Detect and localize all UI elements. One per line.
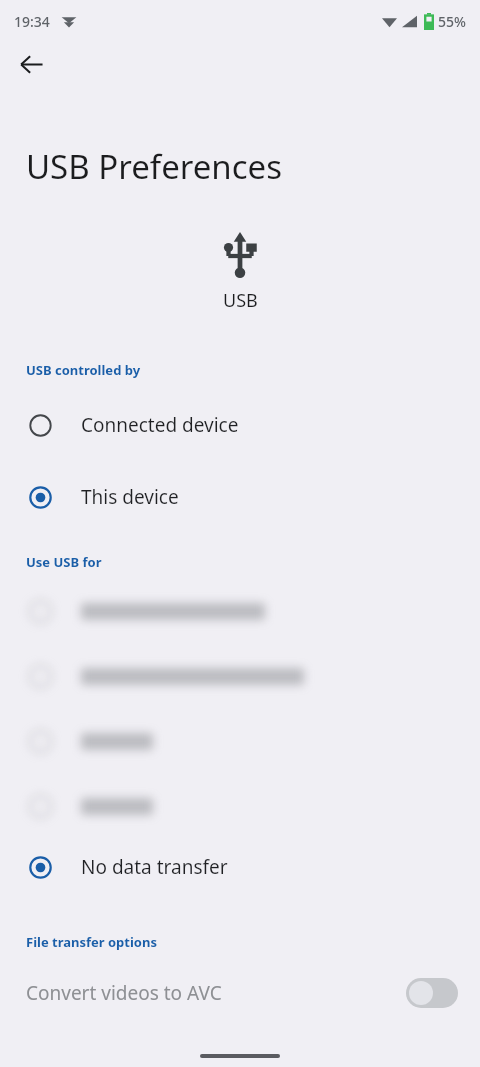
staticText: 55% — [438, 12, 466, 31]
staticText: No data transfer — [81, 854, 228, 880]
staticText: This device — [81, 484, 179, 510]
button[interactable]: No data transfer — [0, 841, 480, 893]
staticText: Convert videos to AVC — [26, 980, 406, 1006]
staticText: 19:34 — [14, 12, 50, 31]
button[interactable]: Convert videos to AVC toggle — [406, 978, 458, 1008]
button[interactable]: This device — [0, 471, 480, 523]
staticText: USB — [223, 288, 258, 313]
staticText: USB controlled by — [26, 361, 141, 379]
button[interactable]: Connected device — [0, 399, 480, 451]
staticText: USB Preferences — [26, 144, 283, 189]
staticText: File transfer options — [26, 933, 157, 951]
staticText: Use USB for — [26, 553, 102, 571]
staticText: Connected device — [81, 412, 239, 438]
button[interactable]: Back — [9, 42, 53, 86]
button[interactable]: Convert videos to AVC — [26, 967, 458, 1019]
